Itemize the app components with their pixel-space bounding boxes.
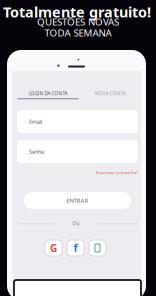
button[interactable]: Entrar com Facebook	[67, 240, 84, 256]
staticText: Ou	[72, 220, 79, 226]
button[interactable]: Esqueceu sua senha?	[17, 169, 138, 176]
staticText: Totalmente gratuito!	[3, 2, 151, 22]
staticText: G	[50, 241, 57, 255]
staticText: QUESTÕES NOVAS	[37, 15, 119, 28]
button[interactable]: Entrar com Google	[45, 240, 62, 256]
staticText: NOVA CONTA	[94, 90, 125, 97]
staticText: Esqueceu sua senha?	[96, 170, 138, 175]
button[interactable]: LOGIN DA CONTA	[17, 89, 79, 100]
staticText: TODA SEMANA	[44, 26, 111, 39]
button[interactable]: Entrar com telefone	[89, 240, 106, 256]
staticText: LOGIN DA CONTA	[28, 90, 67, 97]
staticText: Email	[29, 118, 42, 125]
staticText: ENTRAR	[66, 197, 88, 204]
button[interactable]: ENTRAR	[24, 192, 131, 209]
staticText: Senha	[29, 148, 44, 155]
staticText: f	[73, 240, 77, 255]
button[interactable]: NOVA CONTA	[79, 89, 141, 100]
